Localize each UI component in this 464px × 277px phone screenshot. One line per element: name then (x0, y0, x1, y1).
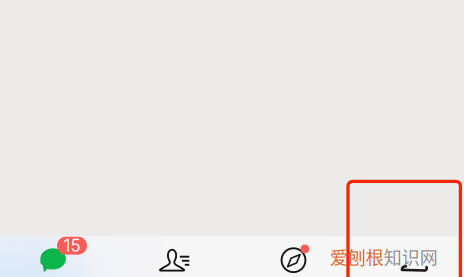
button[interactable]: Chats, 15 unread (22, 235, 88, 277)
button[interactable]: Contacts (138, 235, 204, 277)
staticText: 知识网 (384, 244, 438, 270)
staticText: 爱刨根 (330, 244, 384, 270)
button[interactable]: Discover (261, 235, 327, 277)
staticText: 15 (63, 235, 80, 256)
